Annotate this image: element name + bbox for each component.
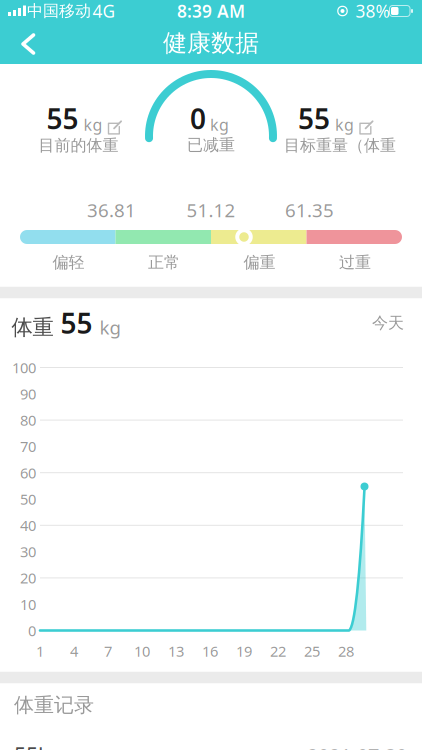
staticText: 20	[20, 568, 36, 588]
staticText: 80	[20, 410, 36, 430]
button[interactable]: 编辑目标重量	[359, 120, 374, 135]
staticText: 30	[20, 542, 36, 561]
staticText: 8:39 AM	[177, 0, 245, 22]
staticText: 40	[20, 516, 36, 535]
staticText: 55	[298, 100, 330, 137]
staticText: 70	[20, 437, 36, 456]
staticText: 已减重	[187, 135, 235, 155]
staticText: 10	[20, 594, 36, 614]
staticText: 60	[20, 463, 36, 482]
staticText: 51.12	[186, 198, 235, 222]
staticText: 0	[28, 621, 36, 640]
staticText: 7	[104, 641, 112, 661]
staticText: kg	[83, 114, 102, 135]
staticText: 0	[190, 100, 206, 137]
staticText: kg	[335, 114, 354, 135]
staticText: kg	[210, 114, 229, 135]
staticText: 16	[202, 641, 218, 661]
staticText: 过重	[339, 253, 371, 272]
staticText: kg	[99, 315, 120, 340]
staticText: 体重	[11, 314, 53, 341]
staticText: 38%	[355, 0, 389, 22]
staticText: 28	[338, 641, 354, 661]
staticText: 25	[304, 641, 320, 661]
staticText: 90	[20, 384, 36, 404]
staticText: 19	[236, 641, 252, 661]
staticText: 偏轻	[52, 253, 84, 272]
staticText: 正常	[148, 253, 180, 272]
staticText: 22	[270, 641, 286, 661]
staticText: 4	[70, 641, 78, 661]
button[interactable]: 返回	[8, 23, 52, 63]
staticText: 1	[36, 641, 44, 661]
staticText: 10	[134, 641, 150, 661]
staticText: 体重记录	[14, 693, 94, 717]
staticText: 36.81	[87, 198, 136, 222]
staticText: 13	[168, 641, 184, 661]
button[interactable]: 编辑目前的体重	[107, 120, 122, 135]
staticText: 55kg	[14, 741, 62, 750]
staticText: 目标重量（体重	[284, 136, 396, 155]
staticText: 4G	[92, 0, 115, 22]
staticText: 50	[20, 489, 36, 509]
staticText: 61.35	[285, 198, 334, 222]
staticText: 2021-07-30	[307, 742, 407, 750]
button[interactable]: 55kg	[0, 744, 422, 750]
staticText: 目前的体重	[38, 136, 118, 155]
staticText: 55	[46, 100, 78, 137]
staticText: 健康数据	[163, 28, 259, 58]
staticText: 55	[60, 304, 92, 342]
staticText: 100	[12, 358, 36, 377]
staticText: 今天	[372, 313, 404, 333]
staticText: 偏重	[243, 253, 275, 272]
staticText: 中国移动	[27, 1, 91, 21]
